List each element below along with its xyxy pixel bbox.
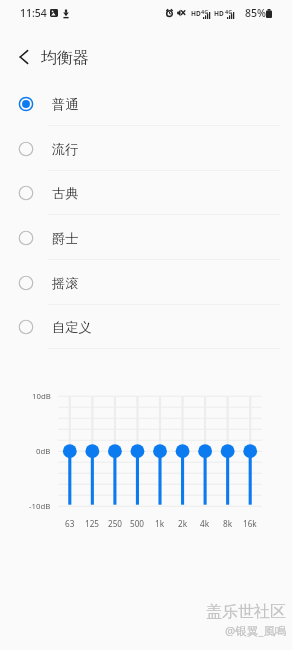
staticText: 11:54: [20, 6, 47, 20]
staticText: HD: [191, 9, 201, 18]
staticText: 2k: [178, 518, 188, 529]
staticText: 10dB: [32, 391, 51, 402]
staticText: 0dB: [36, 446, 51, 457]
staticText: 盖乐世社区: [206, 602, 286, 622]
staticText: -10dB: [29, 501, 51, 512]
staticText: 250: [108, 518, 123, 529]
staticText: 4G: [201, 8, 209, 15]
staticText: 普通: [52, 96, 79, 113]
staticText: 流行: [52, 141, 79, 158]
button[interactable]: 自定义: [0, 304, 292, 349]
staticText: 85%: [245, 6, 266, 20]
button[interactable]: Back: [8, 41, 40, 73]
button[interactable]: 爵士: [0, 215, 292, 260]
staticText: 4k: [200, 518, 210, 529]
staticText: 爵士: [52, 230, 79, 247]
staticText: 自定义: [52, 319, 92, 336]
staticText: 1k: [155, 518, 165, 529]
button[interactable]: 摇滚: [0, 260, 292, 305]
staticText: 16k: [243, 518, 257, 529]
staticText: 摇滚: [52, 275, 79, 292]
button[interactable]: 流行: [0, 126, 292, 171]
button[interactable]: 古典: [0, 170, 292, 215]
staticText: 均衡器: [41, 48, 89, 67]
staticText: 4G: [225, 8, 233, 15]
staticText: 125: [85, 518, 100, 529]
staticText: 63: [65, 518, 75, 529]
staticText: HD: [214, 9, 224, 18]
button[interactable]: 普通: [0, 81, 292, 126]
staticText: @银翼_風鳴: [225, 623, 287, 639]
staticText: 500: [130, 518, 145, 529]
staticText: 8k: [223, 518, 233, 529]
staticText: 古典: [52, 185, 79, 202]
